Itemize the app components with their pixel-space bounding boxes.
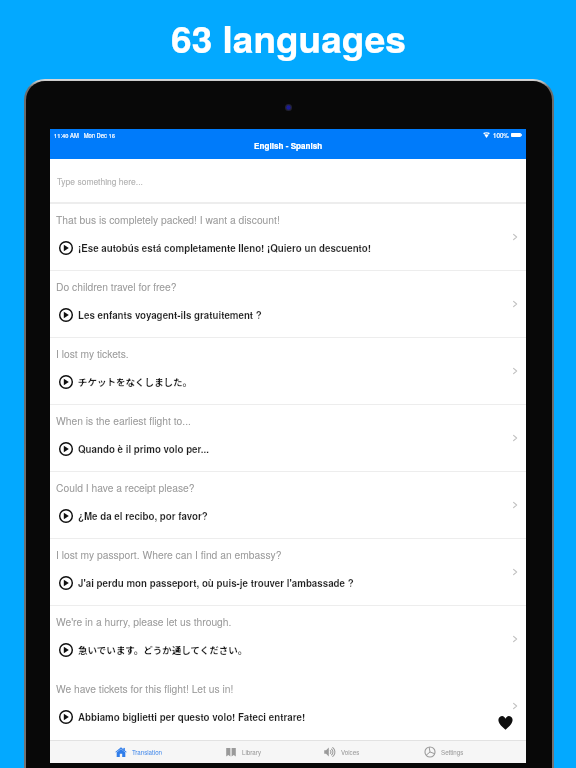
staticText: ¿Me da el recibo, por favor?	[78, 509, 208, 523]
button[interactable]: I lost my passport. Where can I find an …	[50, 538, 526, 605]
button[interactable]: Type something here...	[50, 159, 526, 202]
button[interactable]: Could I have a receipt please?	[50, 471, 526, 538]
staticText: Could I have a receipt please?	[56, 480, 195, 495]
staticText: ¡Ese autobús está completamente lleno! ¡…	[78, 241, 371, 255]
button[interactable]: Play	[59, 241, 73, 255]
staticText: 100%	[493, 131, 509, 140]
staticText: Les enfants voyagent-ils gratuitement ?	[78, 308, 262, 322]
button[interactable]: Play	[59, 643, 73, 657]
staticText: 63 languages	[171, 11, 406, 64]
staticText: J'ai perdu mon passeport, où puis-je tro…	[78, 576, 354, 590]
staticText: 急いでいます。どうか通してください。	[78, 643, 248, 657]
button[interactable]: Voices	[292, 740, 392, 763]
button[interactable]: Favourite	[497, 714, 514, 731]
button[interactable]: Play	[59, 576, 73, 590]
button[interactable]: Play	[59, 308, 73, 322]
staticText: I lost my passport. Where can I find an …	[56, 547, 282, 562]
button[interactable]: Settings	[394, 740, 494, 763]
button[interactable]: Library	[193, 740, 293, 763]
staticText: Voices	[341, 748, 360, 757]
staticText: Do children travel for free?	[56, 279, 177, 294]
staticText: Library	[242, 748, 262, 757]
staticText: We have tickets for this flight! Let us …	[56, 681, 234, 696]
staticText: That bus is completely packed! I want a …	[56, 212, 280, 227]
staticText: Abbiamo biglietti per questo volo! Fatec…	[78, 710, 306, 724]
staticText: Type something here...	[57, 175, 143, 187]
staticText: Quando è il primo volo per...	[78, 442, 209, 456]
button[interactable]: We're in a hurry, please let us through.	[50, 605, 526, 672]
staticText: Translation	[132, 748, 163, 757]
staticText: チケットをなくしました。	[78, 375, 193, 389]
staticText: English - Spanish	[254, 140, 323, 152]
button[interactable]: Play	[59, 710, 73, 724]
button[interactable]: Do children travel for free?	[50, 270, 526, 337]
staticText: 11:40 AM Mon Dec 16	[54, 131, 115, 139]
staticText: When is the earliest flight to...	[56, 413, 191, 428]
staticText: I lost my tickets.	[56, 346, 129, 361]
button[interactable]: That bus is completely packed! I want a …	[50, 203, 526, 270]
button[interactable]: Translation	[89, 740, 189, 763]
button[interactable]: We have tickets for this flight! Let us …	[50, 672, 526, 739]
button[interactable]: Play	[59, 375, 73, 389]
staticText: Settings	[441, 748, 464, 757]
button[interactable]: I lost my tickets.	[50, 337, 526, 404]
button[interactable]: When is the earliest flight to...	[50, 404, 526, 471]
button[interactable]: Play	[59, 442, 73, 456]
button[interactable]: Play	[59, 509, 73, 523]
staticText: We're in a hurry, please let us through.	[56, 614, 232, 629]
